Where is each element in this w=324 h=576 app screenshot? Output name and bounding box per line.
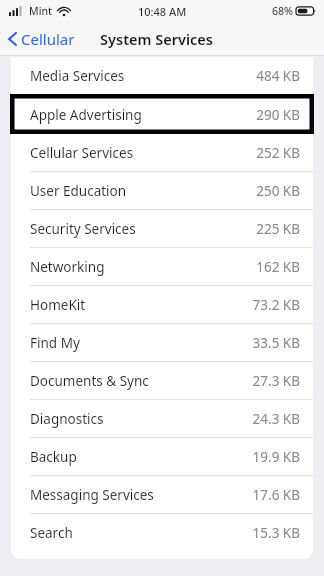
button[interactable]: User Education (11, 172, 313, 209)
staticText: Networking (30, 258, 105, 276)
staticText: 225 KB (256, 220, 300, 238)
staticText: Messaging Services (30, 486, 154, 504)
staticText: 15.3 KB (252, 524, 300, 542)
staticText: Documents & Sync (30, 372, 149, 390)
staticText: 250 KB (256, 182, 300, 200)
button[interactable]: Documents & Sync (11, 362, 313, 399)
staticText: 484 KB (256, 67, 300, 85)
button[interactable]: Search (11, 514, 313, 551)
staticText: Search (30, 524, 73, 542)
staticText: Cellular Services (30, 144, 134, 162)
staticText: Mint (29, 4, 53, 18)
staticText: Apple Advertising (30, 106, 142, 124)
staticText: 27.3 KB (252, 372, 300, 390)
staticText: Diagnostics (30, 410, 104, 428)
button[interactable]: Find My (11, 324, 313, 361)
staticText: Cellular (21, 29, 75, 49)
button[interactable]: HomeKit (11, 286, 313, 323)
staticText: System Services (100, 29, 213, 49)
staticText: 17.6 KB (252, 486, 300, 504)
staticText: 73.2 KB (252, 296, 300, 314)
button[interactable]: Media Services (11, 57, 313, 95)
button[interactable]: Back to Cellular (0, 25, 81, 53)
button[interactable]: Security Services (11, 210, 313, 247)
staticText: 24.3 KB (252, 410, 300, 428)
staticText: User Education (30, 182, 127, 200)
staticText: 10:48 AM (138, 4, 187, 19)
button[interactable]: Diagnostics (11, 400, 313, 437)
staticText: 33.5 KB (252, 334, 300, 352)
button[interactable]: Messaging Services (11, 476, 313, 513)
staticText: 19.9 KB (252, 448, 300, 466)
staticText: Find My (30, 334, 80, 352)
staticText: 162 KB (256, 258, 300, 276)
staticText: Backup (30, 448, 77, 466)
button[interactable]: Networking (11, 248, 313, 285)
staticText: Security Services (30, 220, 136, 238)
staticText: 290 KB (256, 106, 300, 124)
button[interactable]: Cellular Services (11, 134, 313, 171)
staticText: HomeKit (30, 296, 86, 314)
button[interactable]: Backup (11, 438, 313, 475)
staticText: Media Services (30, 67, 125, 85)
button[interactable]: Apple Advertising (11, 96, 313, 133)
staticText: 252 KB (256, 144, 300, 162)
staticText: 68% (272, 4, 293, 18)
other: Back to Cellular (8, 31, 17, 47)
